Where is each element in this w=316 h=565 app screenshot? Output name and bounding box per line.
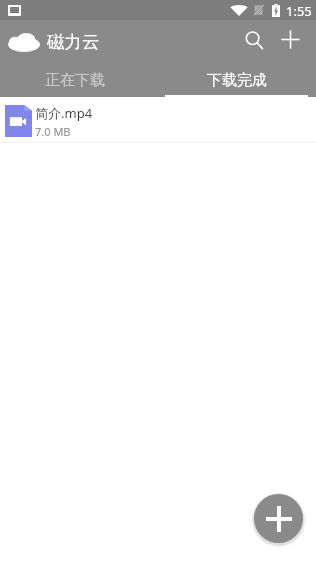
button[interactable]: 简介.mp4 xyxy=(0,97,316,143)
staticText: 下载完成 xyxy=(207,71,267,90)
staticText: 磁力云 xyxy=(47,31,100,53)
button[interactable]: Search xyxy=(233,20,269,56)
button[interactable]: 下载完成 xyxy=(158,62,316,97)
staticText: 正在下载 xyxy=(45,71,105,90)
staticText: 简介.mp4 xyxy=(35,104,93,122)
button[interactable]: Add task xyxy=(271,20,307,56)
button[interactable]: Add download xyxy=(254,494,303,543)
button[interactable]: 正在下载 xyxy=(0,62,158,97)
staticText: 1:55 xyxy=(286,2,312,20)
staticText: 7.0 MB xyxy=(35,124,71,139)
